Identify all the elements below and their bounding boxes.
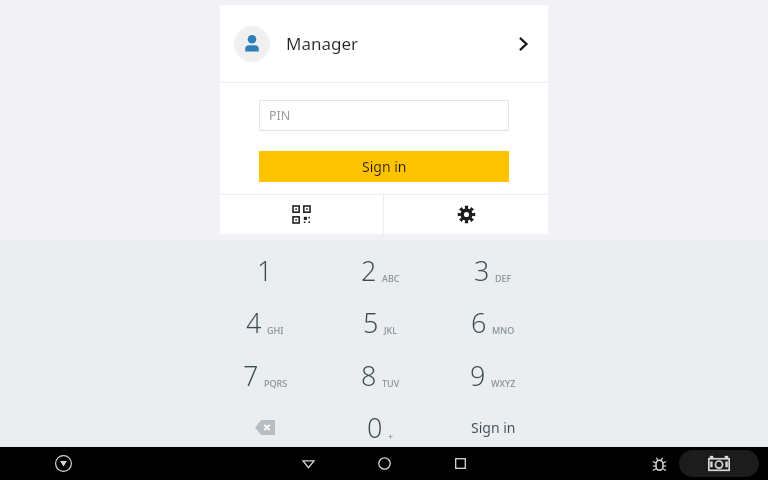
staticText: PIN [269,107,291,124]
staticText: Sign in [362,157,407,176]
button[interactable]: Backspace [213,403,317,451]
staticText: GHI [267,324,284,336]
button[interactable]: Recent apps [422,447,498,480]
button[interactable]: Sign in [441,403,545,451]
staticText: 8 [361,357,377,394]
staticText: 6 [471,304,487,341]
button[interactable]: Screenshot [679,450,759,477]
button[interactable]: 3 [441,246,545,294]
button[interactable]: 5 [328,298,432,346]
button[interactable]: Manager [220,5,548,82]
staticText: TUV [382,377,400,389]
staticText: MNO [492,324,515,336]
button[interactable]: 4 [213,298,317,346]
staticText: JKL [384,324,398,336]
button[interactable]: Sign in [259,151,509,182]
button[interactable]: Back [270,447,346,480]
button[interactable]: 1 [213,246,317,294]
staticText: 7 [243,357,259,394]
staticText: ABC [382,272,400,284]
button[interactable]: Settings [384,195,548,234]
staticText: Manager [286,32,359,55]
button[interactable]: 8 [328,351,432,399]
staticText: 1 [257,252,273,289]
button[interactable]: Accessibility [47,447,80,480]
button[interactable]: Scan QR code [220,195,383,234]
staticText: 9 [470,357,486,394]
button[interactable]: 7 [213,351,317,399]
button[interactable]: PIN [259,100,509,131]
button[interactable]: 2 [328,246,432,294]
staticText: Sign in [471,418,516,437]
staticText: 3 [474,252,490,289]
button[interactable]: 6 [441,298,545,346]
staticText: WXYZ [491,377,516,389]
button[interactable]: Debug [644,449,674,479]
button[interactable]: Home [346,447,422,480]
staticText: + [388,430,394,442]
button[interactable]: 0 [328,403,432,451]
staticText: 2 [361,252,377,289]
staticText: DEF [495,272,512,284]
staticText: 4 [246,304,262,341]
staticText: 0 [367,409,383,446]
staticText: 5 [363,304,379,341]
staticText: PQRS [264,377,288,389]
button[interactable]: 9 [441,351,545,399]
